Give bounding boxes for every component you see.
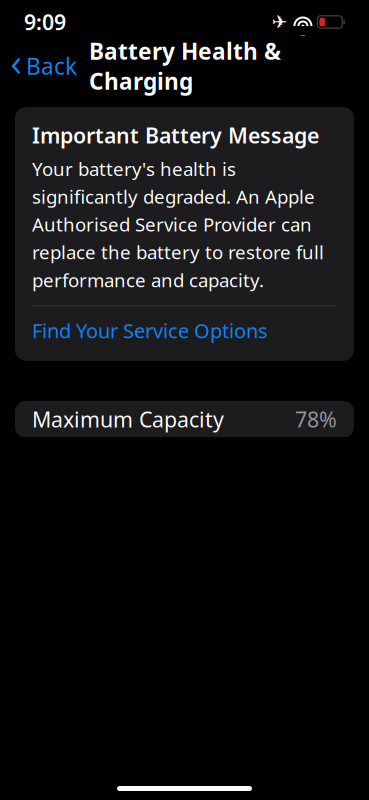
button[interactable]: Maximum Capacity <box>15 401 354 438</box>
staticText: 9:09 <box>24 8 66 36</box>
staticText: To reduce battery ageing, iPhone learns … <box>31 748 327 800</box>
staticText: ✈ <box>272 11 288 33</box>
staticText: Battery Health & Charging <box>89 36 281 96</box>
staticText: Your battery's health is significantly d… <box>32 156 324 292</box>
staticText: Maximum Capacity <box>32 405 224 433</box>
staticText: Back <box>26 51 77 81</box>
staticText: Find Your Service Options <box>32 317 268 344</box>
button[interactable]: Find Your Service Options <box>32 306 337 355</box>
staticText: 78% <box>295 405 337 433</box>
staticText: Important Battery Message <box>32 121 319 149</box>
button[interactable]: Back <box>0 45 77 87</box>
